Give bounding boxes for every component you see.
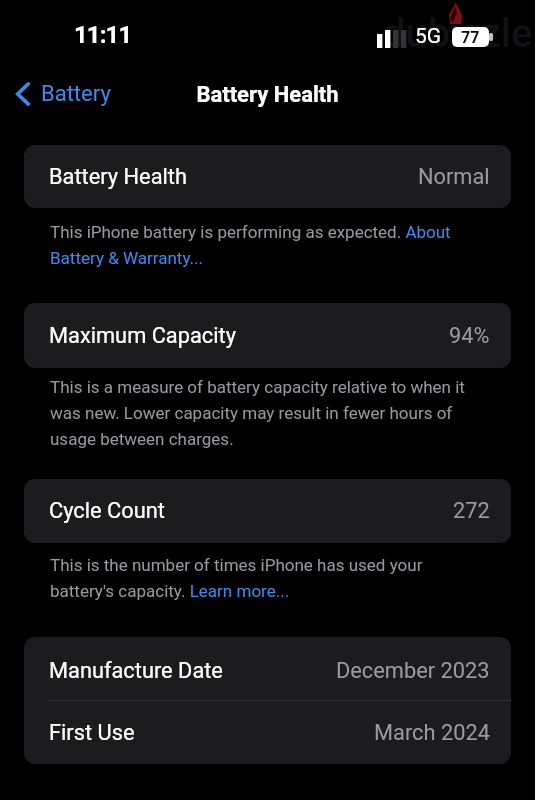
staticText: First Use [49,720,135,746]
staticText: March 2024 [374,720,490,746]
staticText: This iPhone battery is performing as exp… [50,222,485,268]
staticText: Manufacture Date [49,658,223,684]
button[interactable]: Battery Health [24,145,511,208]
staticText: Battery Health [49,164,187,190]
button[interactable]: First Use [24,701,511,764]
staticText: Battery [41,81,111,107]
staticText: dubizzle [383,10,533,57]
button[interactable]: Cycle Count [24,479,511,543]
staticText: 77 [461,28,480,47]
staticText: Battery Health [0,82,535,108]
staticText: This is a measure of battery capacity re… [50,377,485,449]
staticText: Maximum Capacity [49,323,236,349]
staticText: December 2023 [336,658,490,684]
button[interactable]: Learn more about cycle count [188,581,290,603]
button[interactable]: About Battery & Warranty [404,222,454,244]
staticText: 272 [453,498,490,524]
button[interactable]: Manufacture Date [24,637,511,700]
button[interactable]: Maximum Capacity [24,303,511,368]
button[interactable]: Battery [0,77,123,111]
staticText: 94% [449,323,490,349]
staticText: This is the number of times iPhone has u… [50,555,485,601]
staticText: 11:11 [74,21,132,49]
staticText: Cycle Count [49,498,165,524]
button[interactable]: About Battery & Warranty [48,248,204,270]
staticText: 5G [415,24,442,49]
staticText: Normal [418,164,490,190]
